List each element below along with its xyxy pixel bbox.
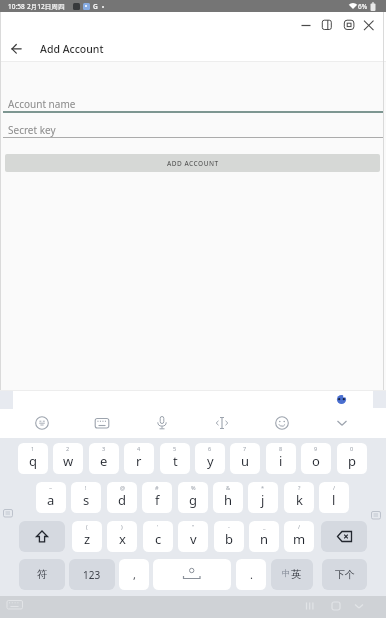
button[interactable]: 4 bbox=[124, 443, 154, 474]
button[interactable]: ) bbox=[107, 521, 137, 552]
staticText: g bbox=[189, 491, 197, 509]
staticText: 中 bbox=[282, 568, 291, 579]
button[interactable] bbox=[342, 18, 356, 32]
button[interactable] bbox=[361, 18, 377, 32]
staticText: j bbox=[261, 491, 265, 509]
staticText: r bbox=[136, 452, 142, 470]
button[interactable]: 6 bbox=[195, 443, 225, 474]
button[interactable] bbox=[8, 40, 26, 58]
staticText: . bbox=[250, 567, 253, 582]
staticText: i bbox=[279, 452, 283, 470]
staticText: Add Account bbox=[40, 42, 104, 56]
button[interactable] bbox=[370, 2, 376, 11]
button[interactable] bbox=[329, 600, 343, 612]
button[interactable]: , bbox=[119, 559, 149, 590]
button[interactable]: 下个 bbox=[322, 559, 367, 590]
button[interactable]: 3 bbox=[89, 443, 119, 474]
button[interactable] bbox=[3, 92, 383, 113]
staticText: 下个 bbox=[335, 568, 355, 581]
button[interactable]: * bbox=[248, 482, 278, 513]
staticText: o bbox=[312, 452, 320, 470]
staticText: c bbox=[155, 530, 162, 548]
button[interactable]: ! bbox=[71, 482, 101, 513]
button[interactable] bbox=[274, 415, 290, 431]
staticText: ( bbox=[86, 523, 88, 530]
button[interactable] bbox=[371, 511, 382, 520]
button[interactable]: ADD ACCOUNT bbox=[5, 154, 380, 172]
staticText: a bbox=[47, 491, 55, 509]
staticText: ' bbox=[157, 523, 159, 530]
button[interactable]: 123 bbox=[69, 559, 115, 590]
button[interactable]: . bbox=[236, 559, 266, 590]
staticText: h bbox=[224, 491, 233, 509]
staticText: t bbox=[173, 452, 178, 470]
staticText: 符 bbox=[37, 568, 48, 581]
staticText: / bbox=[298, 523, 301, 530]
button[interactable] bbox=[34, 415, 50, 431]
button[interactable] bbox=[320, 18, 334, 32]
button[interactable] bbox=[321, 521, 367, 552]
button[interactable]: _ bbox=[249, 521, 279, 552]
button[interactable] bbox=[153, 559, 231, 590]
button[interactable]: 1 bbox=[18, 443, 48, 474]
button[interactable] bbox=[6, 599, 24, 611]
button[interactable] bbox=[154, 415, 170, 431]
button[interactable]: & bbox=[213, 482, 243, 513]
button[interactable]: 符 bbox=[19, 559, 65, 590]
staticText: z bbox=[84, 530, 91, 548]
staticText: " bbox=[192, 523, 195, 530]
staticText: # bbox=[155, 484, 159, 491]
staticText: ~ bbox=[49, 484, 53, 491]
button[interactable]: 9 bbox=[301, 443, 331, 474]
button[interactable]: " bbox=[178, 521, 208, 552]
button[interactable] bbox=[336, 394, 347, 405]
staticText: 2 bbox=[66, 445, 70, 452]
button[interactable]: @ bbox=[107, 482, 137, 513]
staticText: @ bbox=[120, 484, 125, 491]
button[interactable] bbox=[214, 415, 230, 431]
staticText: p bbox=[348, 452, 356, 470]
button[interactable]: 中 bbox=[271, 559, 313, 590]
button[interactable] bbox=[3, 118, 383, 139]
staticText: s bbox=[83, 491, 90, 509]
staticText: y bbox=[207, 452, 214, 470]
button[interactable]: - bbox=[214, 521, 244, 552]
button[interactable]: / bbox=[319, 482, 349, 513]
button[interactable]: 2 bbox=[53, 443, 83, 474]
staticText: 8 bbox=[279, 445, 283, 452]
staticText: x bbox=[119, 530, 126, 548]
staticText: u bbox=[241, 452, 250, 470]
button[interactable] bbox=[19, 521, 65, 552]
button[interactable]: # bbox=[142, 482, 172, 513]
staticText: 10:58 bbox=[8, 2, 25, 11]
button[interactable] bbox=[297, 19, 315, 32]
button[interactable]: ~ bbox=[36, 482, 66, 513]
staticText: n bbox=[260, 530, 269, 548]
staticText: b bbox=[225, 530, 233, 548]
staticText: 9 bbox=[314, 445, 318, 452]
button[interactable] bbox=[303, 600, 317, 612]
staticText: Account name bbox=[8, 97, 76, 111]
button[interactable] bbox=[347, 1, 359, 11]
button[interactable] bbox=[334, 415, 350, 431]
button[interactable]: 8 bbox=[266, 443, 296, 474]
button[interactable]: / bbox=[284, 521, 314, 552]
button[interactable]: 0 bbox=[337, 443, 367, 474]
button[interactable] bbox=[3, 509, 14, 518]
staticText: 5 bbox=[173, 445, 177, 452]
staticText: w bbox=[63, 452, 74, 470]
button[interactable] bbox=[94, 415, 110, 431]
staticText: Secret key bbox=[8, 123, 56, 137]
button[interactable]: % bbox=[178, 482, 208, 513]
staticText: m bbox=[293, 530, 306, 548]
button[interactable]: 7 bbox=[230, 443, 260, 474]
staticText: 6 bbox=[208, 445, 212, 452]
button[interactable]: ' bbox=[143, 521, 173, 552]
staticText: % bbox=[191, 484, 196, 491]
staticText: l bbox=[332, 491, 336, 509]
staticText: 0 bbox=[350, 445, 354, 452]
button[interactable]: ? bbox=[284, 482, 314, 513]
button[interactable]: 5 bbox=[160, 443, 190, 474]
button[interactable]: ( bbox=[72, 521, 102, 552]
button[interactable] bbox=[352, 600, 366, 612]
